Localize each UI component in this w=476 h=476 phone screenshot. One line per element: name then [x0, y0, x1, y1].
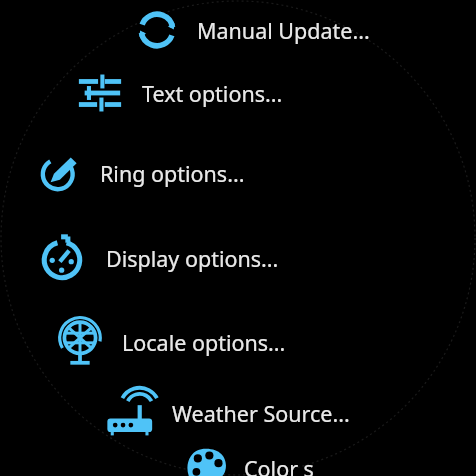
staticText: Manual Update...: [197, 16, 370, 45]
button[interactable]: Display options: [38, 234, 476, 282]
button[interactable]: Weather source: [104, 385, 476, 441]
staticText: Display options...: [106, 244, 279, 273]
other: Manual update: [133, 6, 181, 54]
other: Color settings: [182, 444, 230, 476]
staticText: Locale options...: [122, 328, 286, 357]
other: Text options: [76, 69, 124, 117]
button[interactable]: Text options: [76, 69, 476, 117]
other: Locale options: [54, 316, 106, 368]
button[interactable]: Ring options: [38, 152, 476, 194]
staticText: Ring options...: [100, 159, 245, 188]
staticText: Weather Source...: [172, 399, 350, 428]
other: Display options: [38, 234, 86, 282]
button[interactable]: Manual update: [133, 6, 476, 54]
staticText: Color s: [244, 454, 314, 476]
button[interactable]: Color settings: [182, 444, 476, 476]
staticText: Text options...: [142, 79, 283, 108]
other: Ring options: [38, 152, 80, 194]
button[interactable]: Locale options: [54, 316, 476, 368]
other: Weather source: [104, 385, 160, 441]
